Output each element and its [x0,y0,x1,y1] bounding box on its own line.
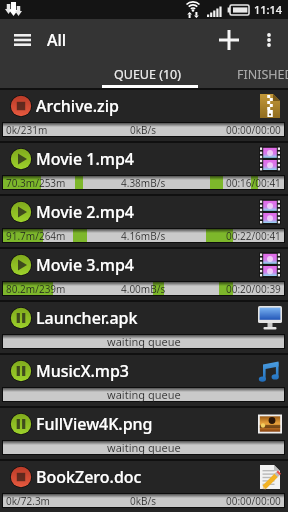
button[interactable] [10,254,32,276]
staticText: Movie 3.mp4 [36,254,134,276]
staticText: Launcher.apk [36,307,138,329]
button[interactable] [10,466,32,488]
staticText: waiting queue [107,440,181,455]
staticText: BookZero.doc [36,466,142,488]
button[interactable] [257,358,283,384]
button[interactable]: QUEUE (10) [97,60,197,88]
staticText: 11:14 [254,2,283,17]
staticText: FullView4K.png [36,413,153,435]
staticText: Archive.zip [36,95,119,117]
staticText: 4.38mB/s [121,176,166,190]
button[interactable] [257,93,283,119]
button[interactable] [10,413,32,435]
staticText: Movie 2.mp4 [36,201,134,223]
staticText: 0kB/s [130,123,157,137]
staticText: 91.7m/264m [6,229,66,243]
staticText: MusicX.mp3 [36,360,130,382]
button[interactable] [10,307,32,329]
button[interactable]: Movie 1.mp4 [0,143,288,194]
button[interactable]: Archive.zip [0,90,288,141]
button[interactable] [0,19,44,60]
button[interactable] [257,252,283,278]
button[interactable]: MusicX.mp3 [0,355,288,406]
button[interactable] [257,199,283,225]
staticText: waiting queue [107,334,181,349]
staticText: 80.2m/239m [6,282,66,296]
button[interactable] [209,19,249,60]
button[interactable]: FullView4K.png [0,408,288,459]
staticText: Movie 1.mp4 [36,148,134,170]
staticText: 70.3m/253m [6,176,66,190]
button[interactable]: BookZero.doc [0,461,288,512]
button[interactable]: Movie 3.mp4 [0,249,288,300]
staticText: 4.16mB/s [121,229,166,243]
button[interactable] [257,464,283,490]
staticText: 00:00/00:00 [226,123,281,137]
button[interactable] [257,305,283,331]
button[interactable] [10,201,32,223]
button[interactable]: Movie 2.mp4 [0,196,288,247]
staticText: QUEUE (10) [114,66,181,83]
button[interactable] [10,148,32,170]
staticText: FINISHED [237,66,288,83]
staticText: 0kB/s [130,494,157,508]
button[interactable] [10,95,32,117]
staticText: 00:16/00:41 [226,176,281,190]
staticText: 4.00mB/s [121,282,166,296]
staticText: 00:00/00:00 [226,494,281,508]
button[interactable] [10,360,32,382]
button[interactable] [257,146,283,172]
button[interactable] [257,411,283,437]
staticText: 00:22/00:41 [226,229,281,243]
staticText: All [47,29,67,51]
staticText: 00:20/00:39 [226,282,281,296]
staticText: waiting queue [107,387,181,402]
staticText: 0k/231m [6,123,48,137]
button[interactable]: FINISHED [237,60,288,88]
staticText: 0k/72.3m [6,494,50,508]
button[interactable]: Launcher.apk [0,302,288,353]
button[interactable] [257,19,281,60]
